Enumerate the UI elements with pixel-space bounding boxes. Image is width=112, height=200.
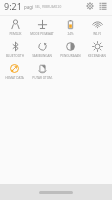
staticText: WI-FI [93,32,101,36]
staticText: BLUETOOTH [6,54,24,58]
button[interactable]: HEMAT DATA [1,62,27,81]
staticText: 24% [67,32,74,36]
button[interactable]: Beranda [39,191,73,194]
button[interactable]: 24% [57,18,83,37]
staticText: pagi [24,4,34,10]
button[interactable]: WI-FI [84,18,110,37]
button[interactable]: Edit urutan [97,0,109,12]
button[interactable]: PEMILIK [2,18,28,37]
staticText: MODE PESAWAT [30,32,54,36]
button[interactable]: SAMBUNGAN [29,40,55,59]
staticText: PENGURASAN [60,54,81,58]
staticText: HEMAT DATA [5,76,24,80]
staticText: SAMBUNGAN [32,54,52,58]
button[interactable]: PENGURASAN [57,40,83,59]
staticText: PEMILIK [9,32,22,36]
staticText: PUTAR OTOM. [32,76,53,80]
staticText: SEL, FEBRUARI 20 [35,5,62,9]
button[interactable]: KECERAHAN [84,40,110,59]
button[interactable]: BLUETOOTH [2,40,28,59]
button[interactable]: Setelan [84,0,96,12]
staticText: KECERAHAN [88,54,106,58]
button[interactable]: PUTAR OTOM. [29,62,55,81]
button[interactable]: MODE PESAWAT [29,18,55,37]
staticText: 9:21 [4,0,22,12]
